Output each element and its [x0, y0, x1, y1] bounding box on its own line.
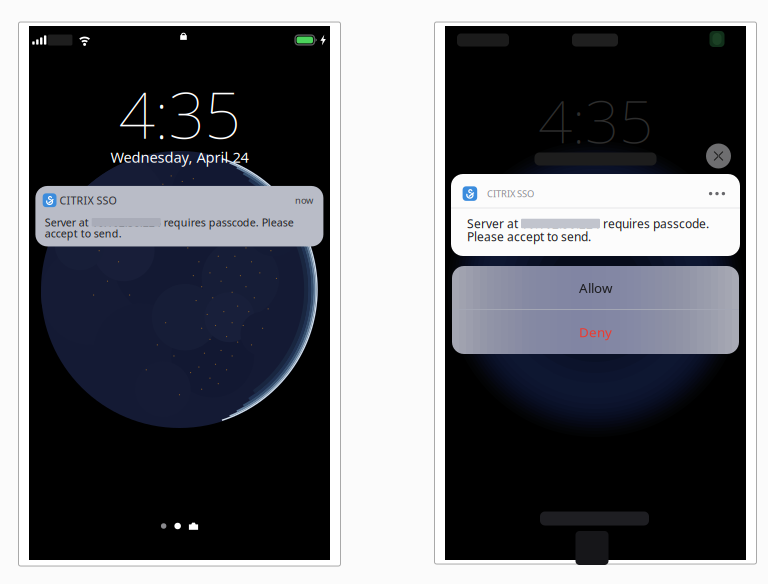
staticText: 4:35 — [118, 71, 240, 156]
button[interactable]: CITRIX SSO — [35, 186, 323, 246]
button[interactable]: Deny — [452, 310, 739, 354]
staticText: CITRIX SSO — [60, 193, 117, 207]
staticText: CITRIX SSO — [487, 187, 534, 200]
staticText: Please accept to send. — [467, 228, 591, 244]
staticText: accept to send. — [45, 226, 122, 241]
staticText: 4:35 — [538, 80, 653, 160]
button[interactable]: Close notification — [706, 143, 731, 168]
staticText: Wednesday, April 24 — [110, 147, 248, 167]
staticText: Server at 10.102.38.224 requires passcod… — [45, 215, 294, 230]
staticText: Allow — [579, 279, 612, 297]
button[interactable]: Allow — [452, 266, 739, 309]
staticText: Deny — [579, 323, 612, 341]
staticText: now — [295, 194, 313, 206]
staticText: Server at 10.102.38.224 requires passcod… — [467, 215, 709, 231]
